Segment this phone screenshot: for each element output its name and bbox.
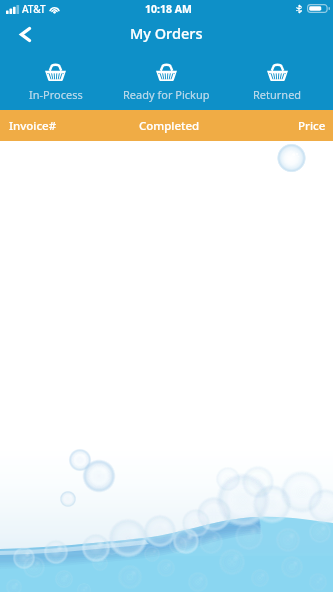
staticText: Returned — [253, 87, 302, 102]
staticText: 10:18 AM — [145, 2, 192, 16]
staticText: Completed — [139, 118, 200, 134]
staticText: Ready for Pickup — [123, 87, 210, 102]
staticText: Price — [298, 118, 326, 134]
staticText: AT&T — [22, 2, 46, 16]
staticText: In-Process — [29, 87, 83, 102]
staticText: Invoice# — [9, 118, 57, 134]
staticText: My Orders — [130, 23, 203, 43]
button[interactable]: Returned — [222, 60, 333, 106]
button[interactable]: Ready for Pickup — [111, 60, 222, 106]
button[interactable]: In-Process — [0, 60, 111, 106]
button[interactable]: Back — [1, 19, 49, 49]
